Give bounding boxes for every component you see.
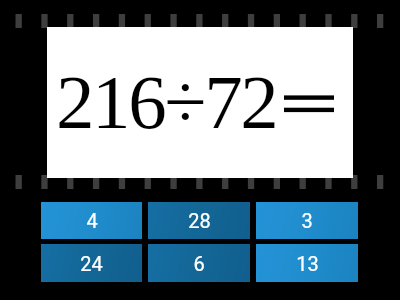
staticText: 24 bbox=[80, 252, 103, 275]
staticText: 13 bbox=[296, 252, 319, 275]
staticText: 3 bbox=[301, 209, 313, 232]
button[interactable]: 6 bbox=[148, 244, 250, 282]
staticText: 4 bbox=[86, 209, 98, 232]
staticText: 216÷72 bbox=[56, 59, 277, 144]
button[interactable]: 13 bbox=[256, 244, 358, 282]
staticText: 28 bbox=[188, 209, 211, 232]
button[interactable]: 4 bbox=[41, 202, 142, 239]
staticText: 6 bbox=[193, 252, 205, 275]
button[interactable]: 3 bbox=[256, 202, 358, 239]
button[interactable]: 28 bbox=[148, 202, 250, 239]
button[interactable]: 24 bbox=[41, 244, 142, 282]
